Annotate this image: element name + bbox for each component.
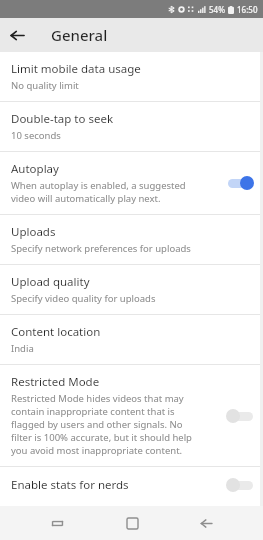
button[interactable]: Toggle on	[225, 174, 255, 192]
staticText: flagged by users and other signals. No	[11, 418, 183, 431]
button[interactable]: Enable stats for nerds	[0, 467, 263, 503]
button[interactable]: Autoplay	[0, 152, 263, 214]
button[interactable]: Limit mobile data usage	[0, 52, 263, 101]
staticText: Uploads	[11, 224, 56, 240]
staticText: No quality limit	[11, 79, 79, 92]
staticText: Limit mobile data usage	[11, 61, 141, 77]
staticText: Restricted Mode	[11, 374, 100, 390]
staticText: Content location	[11, 324, 101, 340]
staticText: General	[51, 25, 108, 45]
staticText: 54%	[209, 4, 225, 15]
staticText: Double-tap to seek	[11, 111, 114, 127]
staticText: India	[11, 342, 34, 355]
staticText: Autoplay	[11, 161, 59, 177]
staticText: you avoid most inappropriate content.	[11, 444, 183, 457]
button[interactable]: Restricted Mode	[0, 365, 263, 466]
staticText: filter is 100% accurate, but it should h…	[11, 431, 192, 444]
staticText: 10 seconds	[11, 129, 61, 142]
button[interactable]: Home	[115, 506, 149, 540]
staticText: When autoplay is enabled, a suggested	[11, 179, 186, 192]
button[interactable]: Double-tap to seek	[0, 102, 263, 151]
button[interactable]: Recents	[40, 506, 74, 540]
button[interactable]: Content location	[0, 315, 263, 364]
staticText: Specify video quality for uploads	[11, 292, 156, 305]
button[interactable]: Toggle off	[225, 407, 255, 425]
button[interactable]: Back	[189, 506, 223, 540]
button[interactable]: Toggle off	[225, 476, 255, 494]
button[interactable]: Uploads	[0, 215, 263, 264]
staticText: contain inappropriate content that is	[11, 405, 175, 418]
staticText: 16:50	[237, 4, 258, 15]
staticText: video will automatically play next.	[11, 192, 161, 205]
button[interactable]: Back	[0, 18, 34, 52]
staticText: Upload quality	[11, 274, 90, 290]
staticText: Restricted Mode hides videos that may	[11, 392, 184, 405]
staticText: Specify network preferences for uploads	[11, 242, 191, 255]
staticText: Enable stats for nerds	[11, 477, 129, 493]
button[interactable]: Upload quality	[0, 265, 263, 314]
